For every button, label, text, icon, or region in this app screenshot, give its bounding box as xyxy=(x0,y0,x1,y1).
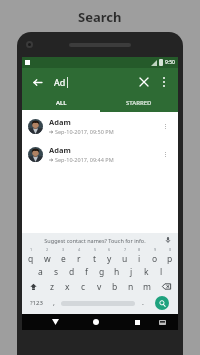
button[interactable]: v xyxy=(91,279,107,294)
button[interactable]: 7 xyxy=(117,247,132,264)
button[interactable]: g xyxy=(94,264,109,279)
staticText: m xyxy=(143,281,151,293)
staticText: Sep-10-2017, 09:44 PM xyxy=(55,156,114,163)
staticText: 6 xyxy=(108,247,111,252)
button[interactable]: Item options xyxy=(158,119,172,133)
button[interactable]: , xyxy=(48,294,59,312)
staticText: ?123 xyxy=(30,299,43,307)
button[interactable]: Shift xyxy=(23,279,44,294)
staticText: h xyxy=(114,266,120,278)
button[interactable]: 8 xyxy=(132,247,147,264)
button[interactable]: 5 xyxy=(87,247,102,264)
staticText: z xyxy=(50,281,54,293)
button[interactable]: x xyxy=(59,279,75,294)
button[interactable]: Space xyxy=(59,294,137,312)
staticText: Adam xyxy=(49,145,71,155)
button[interactable]: k xyxy=(139,264,154,279)
button[interactable]: Search xyxy=(155,296,169,310)
button[interactable]: Adam xyxy=(22,140,178,168)
button[interactable]: f xyxy=(79,264,94,279)
staticText: d xyxy=(69,266,75,278)
staticText: . xyxy=(142,298,144,308)
button[interactable]: Backspace xyxy=(155,279,177,294)
staticText: 2 xyxy=(46,247,49,252)
staticText: w xyxy=(44,253,51,264)
staticText: k xyxy=(144,266,149,278)
staticText: j xyxy=(130,266,133,278)
staticText: 8 xyxy=(138,247,141,252)
button[interactable]: Switch keyboard xyxy=(156,316,168,328)
staticText: 5 xyxy=(94,247,97,252)
staticText: g xyxy=(99,266,105,278)
button[interactable]: 6 xyxy=(102,247,117,264)
button[interactable]: 0 xyxy=(162,247,177,264)
staticText: 7 xyxy=(124,247,127,252)
button[interactable]: b xyxy=(107,279,123,294)
staticText: 1 xyxy=(30,247,33,252)
staticText: 4 xyxy=(78,247,81,252)
staticText: 9 xyxy=(154,247,157,252)
button[interactable]: Home xyxy=(90,316,102,328)
button[interactable]: Recents xyxy=(131,316,143,328)
staticText: u xyxy=(122,253,128,264)
button[interactable]: n xyxy=(123,279,139,294)
staticText: Sep-10-2017, 09:50 PM xyxy=(55,128,114,135)
staticText: n xyxy=(128,281,134,293)
button[interactable]: ALL xyxy=(22,95,100,110)
button[interactable]: 9 xyxy=(147,247,162,264)
button[interactable]: s xyxy=(48,264,64,279)
staticText: p xyxy=(167,253,173,264)
staticText: b xyxy=(112,281,118,293)
staticText: 9:50 xyxy=(165,59,175,66)
staticText: v xyxy=(97,281,102,293)
button[interactable]: More options xyxy=(156,74,172,90)
button[interactable]: 1 xyxy=(23,247,39,264)
button[interactable]: l xyxy=(154,264,169,279)
button[interactable]: Adam xyxy=(22,112,178,140)
staticText: a xyxy=(38,266,43,278)
button[interactable]: m xyxy=(139,279,155,294)
button[interactable]: h xyxy=(109,264,124,279)
button[interactable]: . xyxy=(137,294,148,312)
staticText: c xyxy=(81,281,86,293)
staticText: 0 xyxy=(169,247,172,252)
staticText: Adam xyxy=(49,117,71,127)
button[interactable]: 3 xyxy=(55,247,71,264)
staticText: 3 xyxy=(62,247,65,252)
button[interactable]: Clear xyxy=(135,73,153,91)
button[interactable]: z xyxy=(44,279,59,294)
staticText: e xyxy=(61,253,66,264)
staticText: i xyxy=(138,253,141,264)
staticText: Ad xyxy=(54,76,66,88)
button[interactable]: Voice input xyxy=(163,235,173,245)
button[interactable]: ?123 xyxy=(24,294,48,312)
button[interactable]: 2 xyxy=(39,247,55,264)
button[interactable]: Back xyxy=(49,316,61,328)
staticText: r xyxy=(77,253,81,264)
button[interactable]: Item options xyxy=(158,147,172,161)
staticText: f xyxy=(85,266,88,278)
staticText: Search xyxy=(78,8,122,26)
staticText: l xyxy=(160,266,163,278)
staticText: t xyxy=(93,253,97,264)
button[interactable]: c xyxy=(75,279,91,294)
staticText: y xyxy=(107,253,112,264)
button[interactable]: d xyxy=(64,264,79,279)
staticText: , xyxy=(53,298,55,308)
button[interactable]: STARRED xyxy=(100,95,178,110)
button[interactable]: 4 xyxy=(71,247,87,264)
staticText: x xyxy=(65,281,70,293)
staticText: STARRED xyxy=(126,99,152,107)
staticText: q xyxy=(28,253,34,264)
staticText: s xyxy=(54,266,59,278)
staticText: Suggest contact names? Touch for info. xyxy=(44,237,146,244)
staticText: o xyxy=(152,253,158,264)
staticText: ALL xyxy=(56,99,67,107)
button[interactable]: j xyxy=(124,264,139,279)
button[interactable]: Back xyxy=(28,73,46,91)
button[interactable]: a xyxy=(32,264,48,279)
